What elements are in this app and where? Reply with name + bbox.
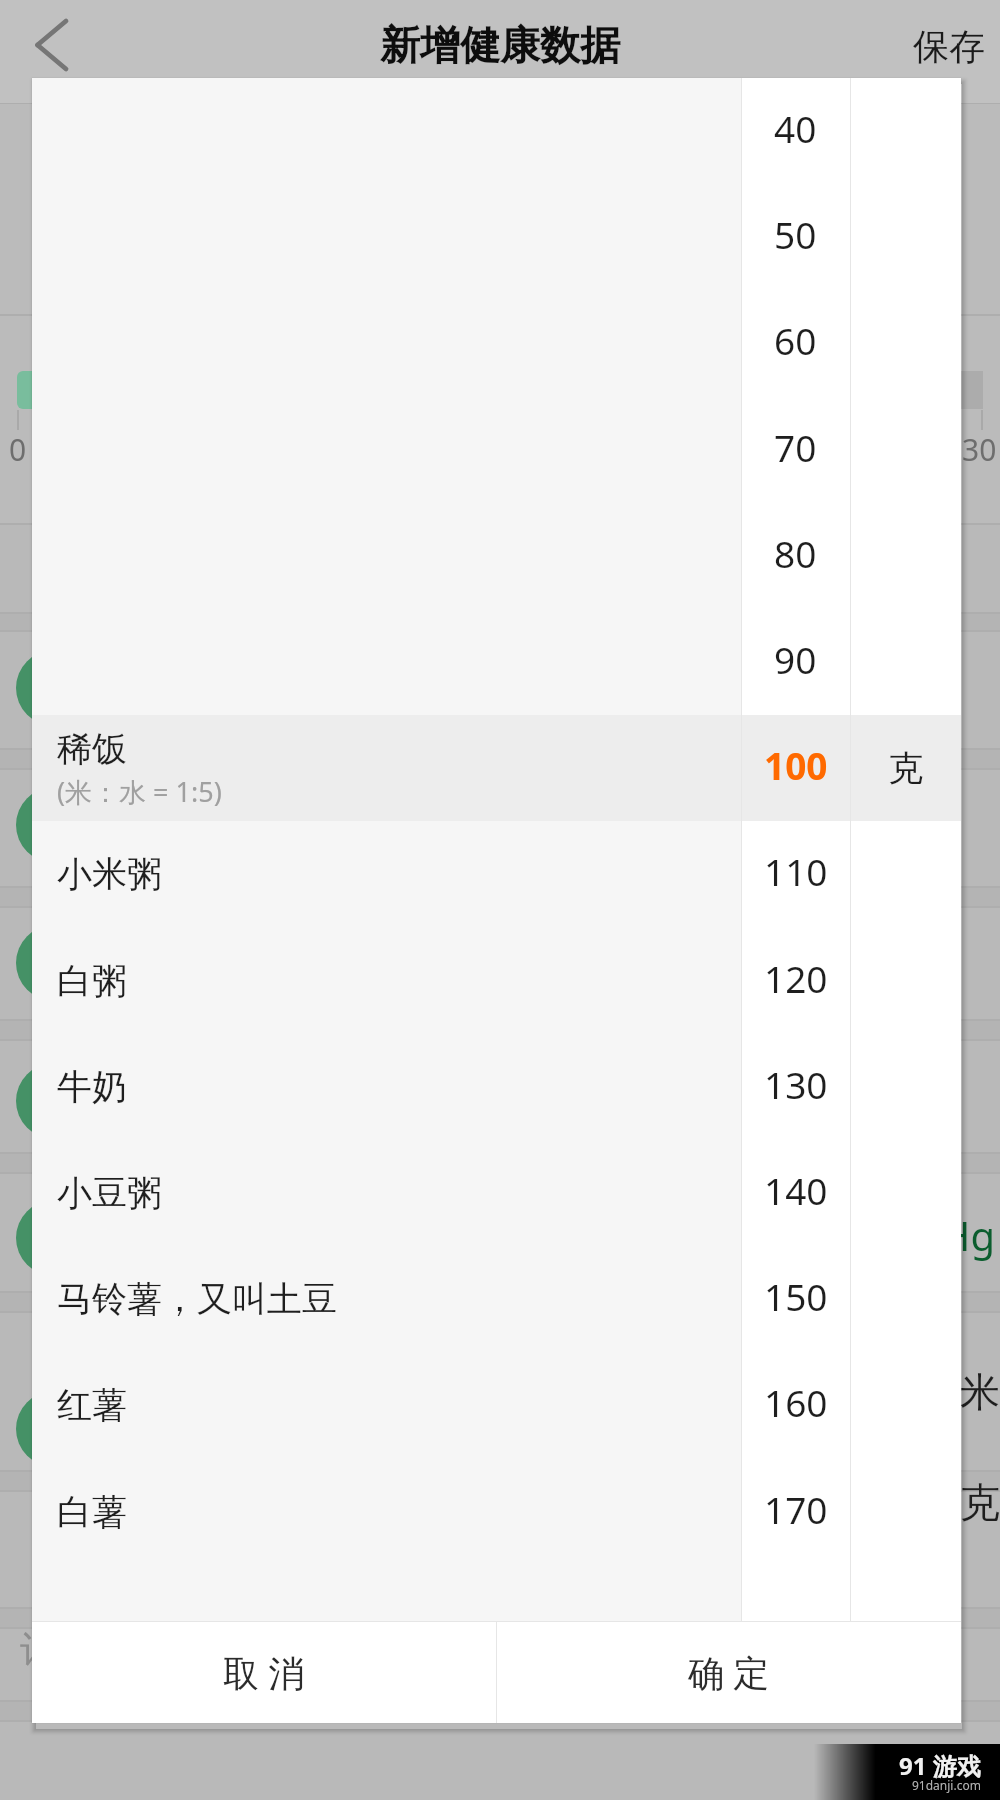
staticText: 91danji.com <box>912 1777 981 1793</box>
staticText: 0 <box>9 429 27 470</box>
staticText: 110 <box>764 846 828 896</box>
button[interactable]: 保存 <box>888 0 1000 103</box>
button[interactable]: 取 消 <box>32 1622 496 1723</box>
staticText: 新增健康数据 <box>380 20 620 70</box>
button[interactable]: 马铃薯，又叫土豆 <box>32 1246 741 1352</box>
button[interactable]: 白薯 <box>32 1459 741 1565</box>
staticText: 取 消 <box>223 1648 305 1697</box>
staticText: 记 <box>20 1626 58 1674</box>
staticText: 80 <box>774 528 817 578</box>
staticText: 牛奶 <box>57 1065 127 1109</box>
staticText: 米 <box>960 1367 1000 1417</box>
staticText: 120 <box>764 953 828 1003</box>
staticText: 150 <box>764 1271 828 1321</box>
staticText: 160 <box>764 1377 828 1427</box>
staticText: 马铃薯，又叫土豆 <box>57 1277 337 1321</box>
staticText: 60 <box>774 315 817 365</box>
staticText: 40 <box>774 103 817 153</box>
staticText: 红薯 <box>57 1383 127 1427</box>
staticText: (米：水 = 1:5) <box>57 773 222 810</box>
button[interactable]: 小豆粥 <box>32 1140 741 1246</box>
button[interactable]: 牛奶 <box>32 1034 741 1140</box>
staticText: mmHg <box>866 1208 996 1262</box>
staticText: 白薯 <box>57 1490 127 1534</box>
staticText: 50 <box>774 209 817 259</box>
staticText: 30 <box>962 429 997 470</box>
staticText: 小豆粥 <box>57 1171 162 1215</box>
staticText: 确 定 <box>688 1648 770 1697</box>
staticText: 小米粥 <box>57 852 162 896</box>
staticText: 170 <box>764 1484 828 1534</box>
staticText: 100 <box>764 740 828 790</box>
staticText: 克 <box>888 746 923 790</box>
staticText: 90 <box>774 634 817 684</box>
button[interactable]: 小米粥 <box>32 821 741 927</box>
button[interactable]: 确 定 <box>497 1622 961 1723</box>
staticText: 130 <box>764 1059 828 1109</box>
button[interactable]: Back <box>0 0 104 103</box>
staticText: 稀饭 <box>57 727 127 771</box>
button[interactable]: 红薯 <box>32 1352 741 1458</box>
staticText: 保存 <box>913 24 985 69</box>
button[interactable]: 稀饭 <box>32 715 741 821</box>
staticText: 70 <box>774 422 817 472</box>
button[interactable]: 白粥 <box>32 928 741 1034</box>
staticText: 克 <box>960 1477 1000 1527</box>
staticText: 91 游戏 <box>899 1749 981 1782</box>
staticText: 140 <box>764 1165 828 1215</box>
staticText: 白粥 <box>57 959 127 1003</box>
